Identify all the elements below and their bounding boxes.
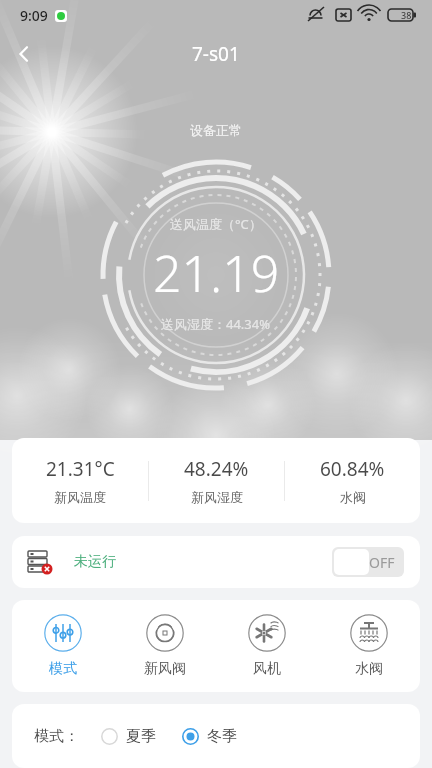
staticText: 9:09 — [20, 6, 48, 25]
button[interactable]: 模式 — [12, 614, 114, 678]
button[interactable]: 21.31°C — [12, 456, 148, 505]
staticText: 送风温度（°C） — [170, 215, 262, 233]
staticText: 模式 — [49, 660, 77, 678]
button[interactable]: 水阀 — [318, 614, 420, 678]
button[interactable]: 风机 — [216, 614, 318, 678]
staticText: 夏季 — [126, 727, 156, 746]
staticText: 新风阀 — [144, 660, 186, 678]
staticText: 38 — [401, 9, 412, 21]
staticText: 21.31°C — [46, 456, 115, 482]
staticText: 送风湿度：44.34% — [161, 315, 271, 333]
staticText: 模式： — [34, 727, 79, 746]
staticText: 21.19 — [153, 239, 280, 307]
staticText: 水阀 — [355, 660, 383, 678]
button[interactable]: 新风阀 — [114, 614, 216, 678]
button[interactable]: 48.24% — [149, 456, 284, 505]
staticText: 风机 — [253, 660, 281, 678]
button[interactable]: 冬季 — [182, 727, 237, 746]
staticText: 新风温度 — [54, 489, 106, 505]
button[interactable]: 未运行 — [12, 536, 420, 588]
button[interactable]: 夏季 — [101, 727, 156, 746]
staticText: 7-s01 — [192, 41, 240, 67]
staticText: 未运行 — [74, 553, 116, 571]
staticText: 新风湿度 — [191, 489, 243, 505]
staticText: OFF — [369, 553, 395, 572]
button[interactable]: 60.84% — [285, 456, 420, 505]
button[interactable]: Power toggle — [332, 547, 404, 577]
staticText: 设备正常 — [0, 122, 432, 138]
staticText: 60.84% — [320, 456, 385, 482]
staticText: 48.24% — [184, 456, 249, 482]
staticText: 水阀 — [340, 489, 366, 505]
button[interactable]: Back — [0, 30, 48, 78]
staticText: 冬季 — [207, 727, 237, 746]
